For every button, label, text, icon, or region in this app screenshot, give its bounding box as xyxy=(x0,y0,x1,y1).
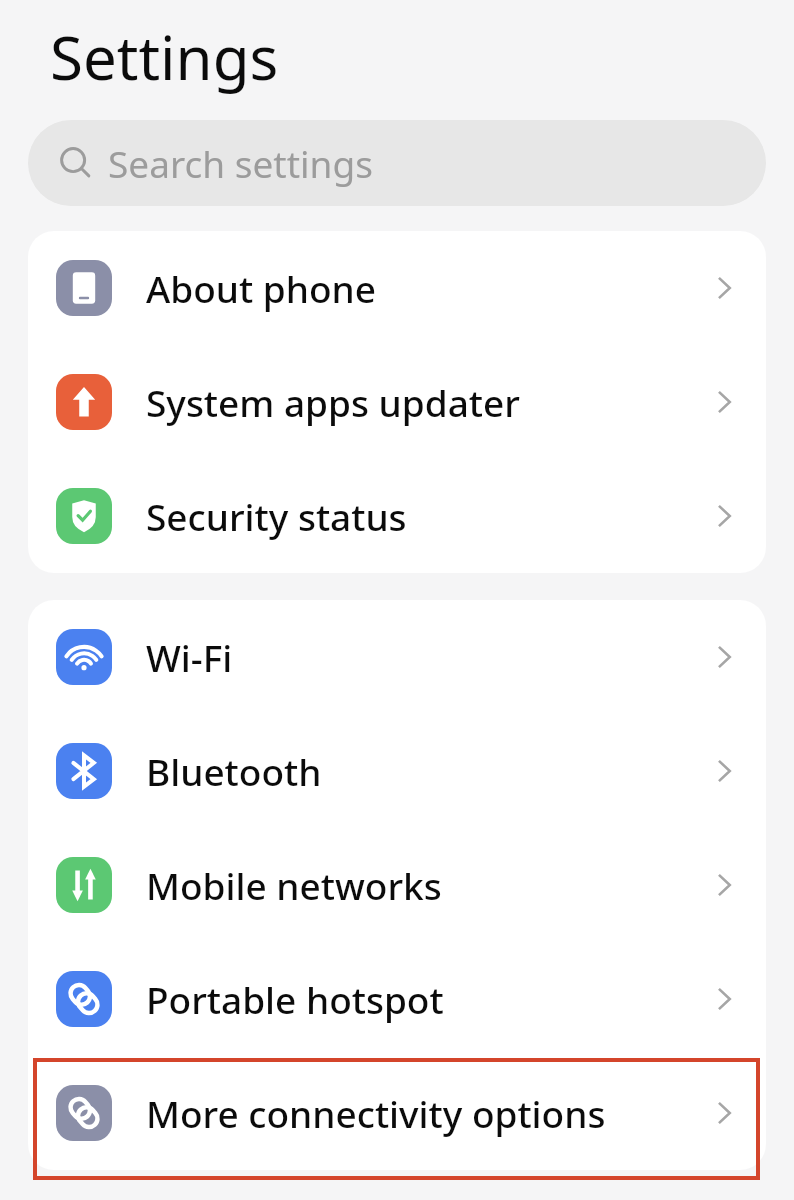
button[interactable]: Security status xyxy=(28,459,766,573)
staticText: More connectivity options xyxy=(146,1088,706,1138)
button[interactable]: Portable hotspot xyxy=(28,942,766,1056)
button[interactable]: System apps updater xyxy=(28,345,766,459)
staticText: Security status xyxy=(146,491,706,541)
staticText: Search settings xyxy=(108,138,373,188)
staticText: Portable hotspot xyxy=(146,974,706,1024)
staticText: Mobile networks xyxy=(146,860,706,910)
button[interactable]: Wi-Fi xyxy=(28,600,766,714)
button[interactable]: Mobile networks xyxy=(28,828,766,942)
staticText: System apps updater xyxy=(146,377,706,427)
button[interactable]: Search settings xyxy=(28,120,766,206)
staticText: Bluetooth xyxy=(146,746,706,796)
button[interactable]: More connectivity options xyxy=(28,1056,766,1170)
staticText: Settings xyxy=(50,16,279,98)
staticText: About phone xyxy=(146,263,706,313)
staticText: Wi-Fi xyxy=(146,632,706,682)
button[interactable]: Bluetooth xyxy=(28,714,766,828)
button[interactable]: About phone xyxy=(28,231,766,345)
